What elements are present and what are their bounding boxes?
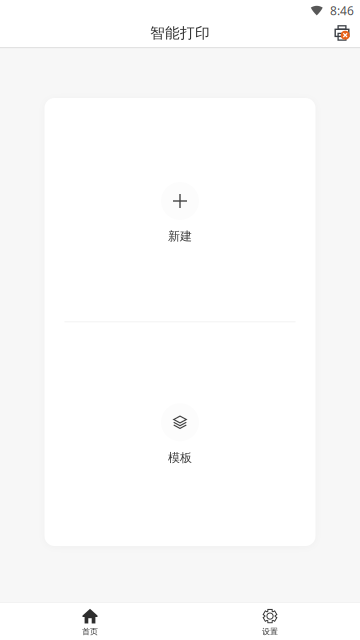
button[interactable]: 模板 [161,403,199,465]
button[interactable]: Printer status [328,20,356,46]
staticText: 智能打印 [150,24,210,42]
staticText: 8:46 [330,2,354,18]
staticText: 模板 [168,450,192,465]
staticText: 设置 [262,627,278,636]
button[interactable]: 首页 [0,603,180,640]
button[interactable]: 新建 [161,182,199,244]
button[interactable]: 设置 [180,603,360,640]
staticText: 首页 [82,627,98,636]
staticText: 新建 [168,229,192,244]
